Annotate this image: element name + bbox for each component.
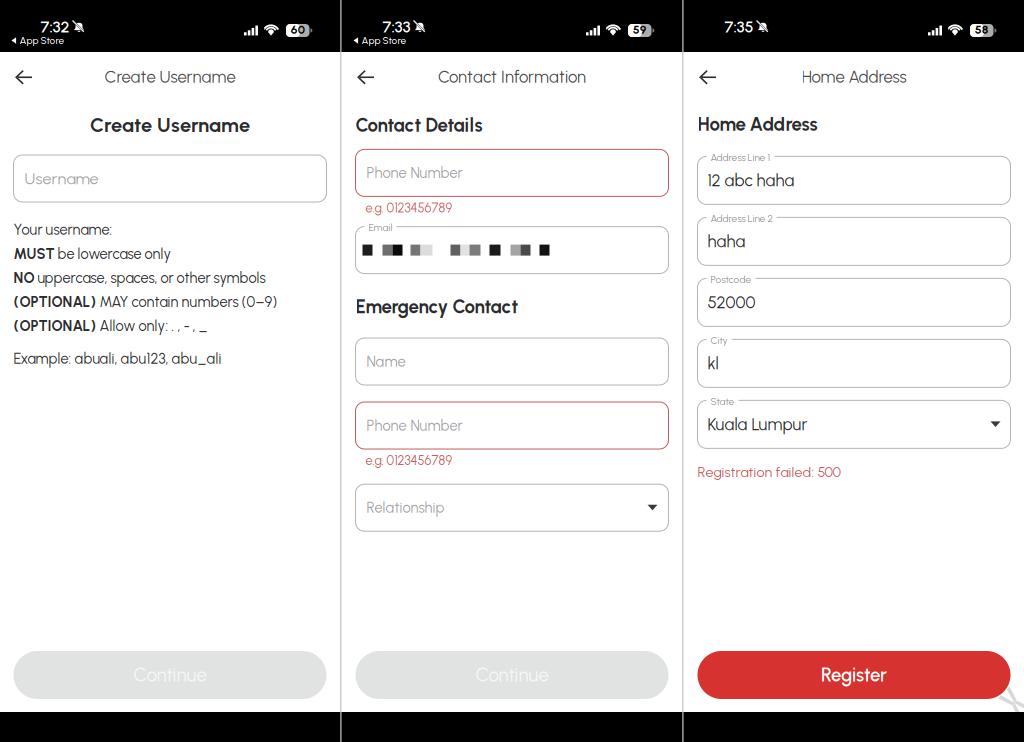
staticText: MUST be lowercase only (13, 245, 171, 262)
button[interactable]: Continue (355, 651, 668, 699)
staticText: 7:33 (382, 17, 410, 37)
staticText: Example: abuali, abu123, abu_ali (13, 350, 221, 367)
staticText: kl (707, 353, 718, 373)
staticText: e.g. 0123456789 (365, 200, 452, 216)
staticText: Continue (133, 664, 206, 686)
staticText: Email (368, 222, 392, 234)
button[interactable]: Relationship (355, 484, 668, 531)
staticText: App Store (362, 34, 407, 46)
staticText: Address Line 2 (710, 212, 772, 224)
staticText: Phone Number (366, 417, 462, 434)
staticText: Relationship (366, 499, 444, 516)
staticText: Register (821, 664, 887, 686)
staticText: 58 (975, 22, 989, 37)
staticText: Emergency Contact (355, 296, 518, 318)
staticText: 7:35 (724, 17, 753, 37)
staticText: City (710, 334, 727, 346)
button[interactable]: Back (0, 52, 47, 102)
button[interactable]: Phone Number (355, 402, 668, 449)
staticText: App Store (20, 34, 65, 46)
staticText: Create Username (104, 67, 235, 87)
button[interactable]: 52000 (697, 278, 1010, 326)
staticText: NO uppercase, spaces, or other symbols (13, 269, 265, 286)
button[interactable]: Continue (13, 651, 326, 699)
staticText: 7:32 (40, 17, 69, 37)
staticText: Create Username (90, 113, 250, 137)
staticText: Address Line 1 (710, 151, 770, 163)
staticText: Kuala Lumpur (707, 414, 807, 434)
button[interactable]: Back (341, 52, 389, 102)
button[interactable]: Phone Number (355, 149, 668, 196)
staticText: (OPTIONAL) MAY contain numbers (0–9) (13, 293, 277, 310)
staticText: 59 (633, 22, 647, 37)
staticText: Continue (475, 664, 548, 686)
staticText: Username (24, 169, 98, 188)
staticText: Your username: (13, 221, 112, 238)
staticText: Postcode (710, 273, 751, 285)
staticText: Contact Details (355, 114, 482, 136)
button[interactable]: haha (697, 217, 1010, 265)
button[interactable]: Username (13, 155, 326, 202)
staticText: Contact Information (438, 67, 586, 87)
staticText: Registration failed: 500 (697, 463, 840, 480)
staticText: Home Address (697, 113, 817, 135)
staticText: e.g. 0123456789 (365, 453, 452, 468)
button[interactable]: Name (355, 338, 668, 385)
staticText: Home Address (801, 67, 906, 87)
staticText: State (710, 395, 734, 407)
staticText: haha (707, 231, 745, 251)
button[interactable]: Back (683, 52, 731, 102)
staticText: 12 abc haha (707, 170, 794, 190)
staticText: 52000 (707, 292, 755, 312)
button[interactable]: Register (697, 651, 1010, 699)
button[interactable]: Kuala Lumpur (697, 400, 1010, 448)
button[interactable]: 12 abc haha (697, 156, 1010, 204)
staticText: 60 (291, 22, 305, 37)
staticText: Phone Number (366, 164, 462, 182)
staticText: Name (366, 353, 405, 370)
staticText: (OPTIONAL) Allow only: . , - , _ (13, 317, 207, 334)
button[interactable]: kl (697, 339, 1010, 387)
